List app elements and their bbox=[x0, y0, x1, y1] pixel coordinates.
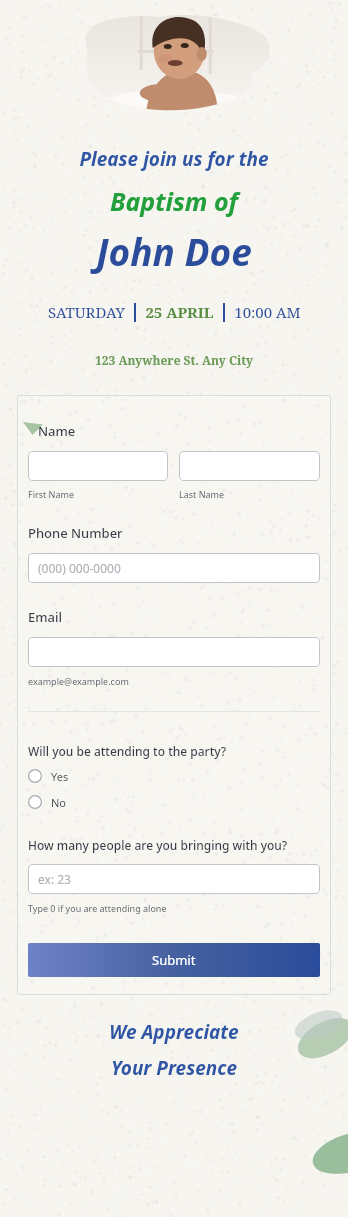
staticText: How many people are you bringing with yo… bbox=[28, 837, 288, 853]
button[interactable]: Last Name bbox=[179, 451, 320, 481]
staticText: ex: 23 bbox=[38, 871, 71, 887]
staticText: Baptism of bbox=[0, 184, 348, 218]
button[interactable]: Submit bbox=[28, 943, 320, 977]
staticText: John Doe bbox=[0, 226, 348, 276]
staticText: 10:00 AM bbox=[234, 302, 301, 322]
staticText: We Appreciate bbox=[0, 1019, 348, 1045]
staticText: example@example.com bbox=[28, 675, 129, 687]
staticText: Yes bbox=[51, 769, 69, 784]
staticText: Submit bbox=[152, 951, 196, 969]
button[interactable]: First Name bbox=[28, 451, 168, 481]
button[interactable]: Number of guests bbox=[28, 864, 320, 894]
button[interactable]: Yes bbox=[28, 765, 320, 787]
staticText: Phone Number bbox=[28, 524, 123, 542]
staticText: Your Presence bbox=[0, 1055, 348, 1081]
staticText: Email bbox=[28, 608, 63, 626]
staticText: Last Name bbox=[179, 488, 225, 500]
staticText: Will you be attending to the party? bbox=[28, 743, 227, 759]
staticText: Please join us for the bbox=[0, 146, 348, 172]
button[interactable]: Email bbox=[28, 637, 320, 667]
button[interactable]: No bbox=[28, 791, 320, 813]
staticText: SATURDAY bbox=[48, 302, 125, 322]
staticText: Type 0 if you are attending alone bbox=[28, 902, 167, 914]
button[interactable]: Phone Number bbox=[28, 553, 320, 583]
staticText: Name bbox=[38, 422, 76, 440]
staticText: 123 Anywhere St. Any City bbox=[0, 352, 348, 368]
staticText: 25 APRIL bbox=[145, 302, 214, 322]
staticText: First Name bbox=[28, 488, 74, 500]
staticText: (000) 000-0000 bbox=[38, 560, 121, 576]
staticText: No bbox=[51, 795, 67, 810]
